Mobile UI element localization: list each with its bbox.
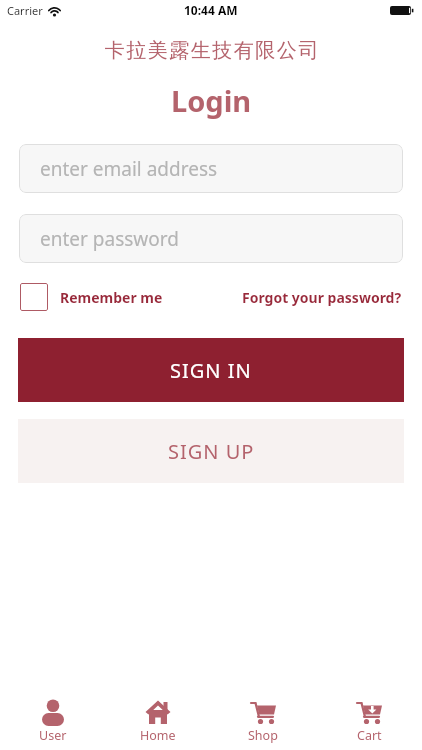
button[interactable]: Shop — [210, 690, 316, 750]
button[interactable]: User — [0, 690, 105, 750]
button[interactable]: enter email address — [19, 144, 403, 193]
staticText: 10:44 AM — [184, 2, 238, 18]
staticText: User — [39, 727, 67, 744]
button[interactable] — [20, 283, 48, 311]
staticText: Cart — [357, 727, 382, 744]
staticText: 卡拉美露生技有限公司 — [104, 38, 319, 63]
button[interactable]: Cart — [316, 690, 422, 750]
button[interactable]: SIGN UP — [18, 419, 404, 483]
staticText: Carrier — [7, 3, 43, 18]
staticText: Home — [140, 727, 176, 744]
staticText: Shop — [248, 727, 278, 744]
staticText: SIGN IN — [170, 357, 252, 384]
staticText: SIGN UP — [168, 438, 255, 465]
staticText: enter password — [40, 226, 179, 252]
staticText: enter email address — [40, 156, 218, 182]
button[interactable]: enter password — [19, 214, 403, 263]
button[interactable]: Forgot your password? — [242, 288, 402, 307]
staticText: Login — [171, 81, 252, 120]
button[interactable]: SIGN IN — [18, 338, 404, 402]
staticText: Remember me — [60, 288, 163, 307]
button[interactable]: Home — [105, 690, 210, 750]
